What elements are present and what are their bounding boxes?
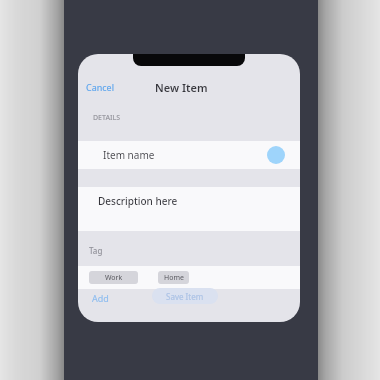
button[interactable]: Item name [78,141,300,169]
staticText: Work [105,273,123,283]
button[interactable]: Save Item [152,288,218,304]
staticText: Description here [98,194,178,208]
staticText: Save Item [166,291,204,302]
button[interactable]: Cancel [83,79,118,95]
staticText: Item name [103,148,155,162]
staticText: New Item [155,80,208,95]
staticText: Cancel [86,81,115,93]
staticText: Add [92,292,109,304]
button[interactable]: Work [89,271,138,284]
button[interactable]: Description here [78,187,300,231]
staticText: DETAILS [93,113,121,123]
staticText: Tag [89,245,103,256]
button[interactable]: Add [90,289,111,307]
button[interactable]: Home [158,271,189,284]
staticText: Home [164,273,184,283]
